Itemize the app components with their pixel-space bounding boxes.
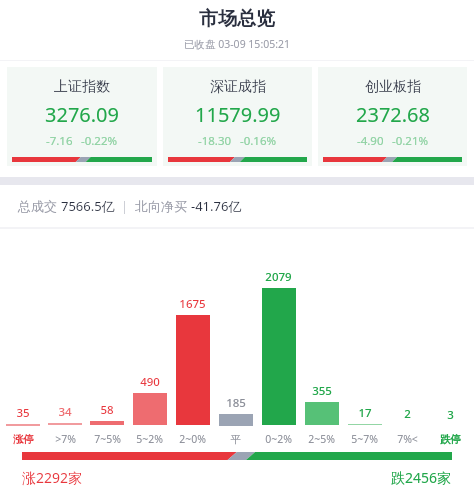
staticText: 185 xyxy=(226,395,246,411)
staticText: | xyxy=(115,198,135,214)
button[interactable]: 2079 xyxy=(257,229,300,452)
staticText: 5~7% xyxy=(351,432,378,446)
button[interactable]: 17 xyxy=(343,229,386,452)
staticText: 7~5% xyxy=(94,432,121,446)
button[interactable]: 58 xyxy=(86,229,128,452)
staticText: 2~0% xyxy=(179,432,206,446)
staticText: -7.16 xyxy=(46,133,73,149)
staticText: 34 xyxy=(58,404,72,420)
staticText: -0.16% xyxy=(240,133,277,149)
button[interactable]: 总成交 xyxy=(0,185,474,227)
staticText: 1675 xyxy=(179,296,206,312)
staticText: 上证指数 xyxy=(54,78,110,96)
staticText: -0.22% xyxy=(81,133,118,149)
staticText: 涨2292家 xyxy=(22,468,83,487)
other: Advance decline ratio xyxy=(323,157,462,162)
staticText: 北向净买 xyxy=(135,197,191,215)
staticText: 7566.5亿 xyxy=(61,197,115,215)
button[interactable]: 185 xyxy=(214,229,257,452)
staticText: 跌停 xyxy=(440,433,461,446)
staticText: 11579.99 xyxy=(195,101,281,128)
staticText: 7%< xyxy=(397,432,418,446)
button[interactable]: 34 xyxy=(44,229,86,452)
staticText: 0~2% xyxy=(265,432,292,446)
staticText: 17 xyxy=(358,405,372,421)
staticText: 创业板指 xyxy=(365,78,421,96)
staticText: 355 xyxy=(312,383,332,399)
button[interactable]: 35 xyxy=(2,229,44,452)
button[interactable]: 1675 xyxy=(171,229,214,452)
staticText: -18.30 xyxy=(198,133,232,149)
staticText: 平 xyxy=(230,433,241,446)
other: Advance decline ratio xyxy=(12,157,152,162)
staticText: -0.21% xyxy=(392,133,429,149)
staticText: 490 xyxy=(140,374,160,390)
staticText: -41.76亿 xyxy=(191,197,242,215)
button[interactable]: 创业板指 xyxy=(318,67,467,166)
button[interactable]: 3 xyxy=(429,229,472,452)
staticText: 58 xyxy=(100,402,114,418)
button[interactable]: 355 xyxy=(300,229,343,452)
staticText: 2079 xyxy=(265,269,292,285)
staticText: 2 xyxy=(404,406,411,422)
staticText: 5~2% xyxy=(136,432,163,446)
button[interactable]: 490 xyxy=(128,229,171,452)
staticText: 涨停 xyxy=(13,433,34,446)
staticText: -4.90 xyxy=(357,133,384,149)
staticText: 跌2456家 xyxy=(391,468,452,487)
button[interactable]: 深证成指 xyxy=(163,67,312,166)
staticText: 市场总览 xyxy=(199,7,275,31)
staticText: 3276.09 xyxy=(45,101,119,128)
other: Advance decline ratio xyxy=(22,452,452,460)
staticText: 2372.68 xyxy=(356,101,430,128)
button[interactable]: 2 xyxy=(386,229,429,452)
staticText: 深证成指 xyxy=(210,78,266,96)
staticText: >7% xyxy=(55,432,76,446)
staticText: 总成交 xyxy=(18,197,61,215)
button[interactable]: 上证指数 xyxy=(7,67,157,166)
staticText: 3 xyxy=(447,407,454,423)
staticText: 35 xyxy=(16,405,30,421)
other: Advance decline ratio xyxy=(168,157,307,162)
staticText: 2~5% xyxy=(308,432,335,446)
staticText: 已收盘 03-09 15:05:21 xyxy=(184,37,291,51)
